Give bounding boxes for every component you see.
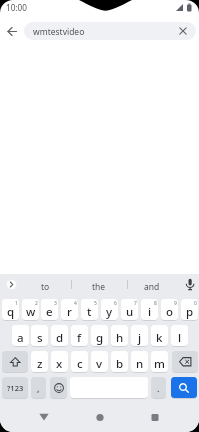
staticText: r <box>67 304 72 320</box>
staticText: g <box>96 330 104 346</box>
button[interactable] <box>172 351 198 372</box>
button[interactable]: and <box>131 278 173 295</box>
staticText: s <box>37 330 43 346</box>
button[interactable]: h <box>111 325 128 346</box>
staticText: ?123 <box>7 383 24 393</box>
staticText: 2 <box>35 300 38 307</box>
button[interactable]: i <box>141 299 158 320</box>
staticText: wmtestvideo <box>33 26 85 38</box>
staticText: o <box>166 304 174 320</box>
staticText: u <box>126 304 134 320</box>
staticText: k <box>156 330 163 346</box>
button[interactable] <box>145 407 165 427</box>
button[interactable]: v <box>91 351 108 372</box>
button[interactable]: t <box>81 299 98 320</box>
staticText: v <box>96 356 103 372</box>
staticText: 10:00 <box>6 2 27 13</box>
button[interactable]: ?123 <box>2 377 28 398</box>
button[interactable] <box>184 278 196 291</box>
button[interactable] <box>50 377 67 398</box>
button[interactable] <box>171 377 197 398</box>
staticText: 6 <box>114 300 117 307</box>
button[interactable]: f <box>71 325 88 346</box>
staticText: n <box>136 356 144 372</box>
button[interactable]: to <box>26 278 64 295</box>
button[interactable]: z <box>31 351 48 372</box>
button[interactable]: o <box>161 299 178 320</box>
staticText: 5 <box>94 300 97 307</box>
button[interactable]: , <box>31 377 46 398</box>
button[interactable]: d <box>51 325 68 346</box>
button[interactable]: wmtestvideo <box>24 22 196 40</box>
button[interactable]: w <box>22 299 39 320</box>
button[interactable]: j <box>131 325 148 346</box>
staticText: f <box>77 330 82 346</box>
staticText: 0 <box>194 300 197 307</box>
staticText: m <box>154 356 165 372</box>
button[interactable] <box>34 407 54 427</box>
button[interactable]: m <box>151 351 168 372</box>
staticText: and <box>144 281 160 293</box>
staticText: to <box>41 281 50 293</box>
staticText: c <box>77 356 83 372</box>
staticText: 7 <box>134 300 137 307</box>
button[interactable] <box>2 351 28 372</box>
staticText: i <box>148 304 152 320</box>
button[interactable]: the <box>76 278 122 295</box>
button[interactable]: r <box>61 299 78 320</box>
staticText: d <box>56 330 64 346</box>
button[interactable]: p <box>181 299 198 320</box>
staticText: y <box>106 304 113 320</box>
staticText: 8 <box>154 300 157 307</box>
staticText: w <box>26 304 36 320</box>
button[interactable] <box>90 407 110 427</box>
staticText: 9 <box>174 300 177 307</box>
button[interactable] <box>4 24 21 39</box>
button[interactable]: e <box>41 299 58 320</box>
button[interactable]: g <box>91 325 108 346</box>
button[interactable]: . <box>151 377 166 398</box>
button[interactable]: q <box>2 299 19 320</box>
button[interactable]: x <box>51 351 68 372</box>
button[interactable]: s <box>31 325 48 346</box>
staticText: . <box>157 382 160 394</box>
staticText: x <box>56 356 63 372</box>
button[interactable]: a <box>12 325 29 346</box>
staticText: t <box>87 304 92 320</box>
staticText: e <box>46 304 53 320</box>
staticText: b <box>116 356 124 372</box>
button[interactable] <box>6 279 17 290</box>
staticText: q <box>7 304 15 320</box>
button[interactable]: y <box>101 299 118 320</box>
button[interactable]: b <box>111 351 128 372</box>
staticText: the <box>92 281 106 293</box>
button[interactable]: k <box>151 325 168 346</box>
button[interactable]: n <box>131 351 148 372</box>
button[interactable]: u <box>121 299 138 320</box>
staticText: h <box>116 330 124 346</box>
staticText: p <box>186 304 194 320</box>
staticText: z <box>37 356 43 372</box>
staticText: 1 <box>15 300 18 307</box>
button[interactable]: c <box>71 351 88 372</box>
staticText: , <box>37 382 40 394</box>
staticText: l <box>178 330 182 346</box>
staticText: j <box>138 330 142 346</box>
staticText: a <box>17 330 24 346</box>
staticText: 3 <box>54 300 57 307</box>
button[interactable]: l <box>171 325 188 346</box>
staticText: 4 <box>74 300 77 307</box>
